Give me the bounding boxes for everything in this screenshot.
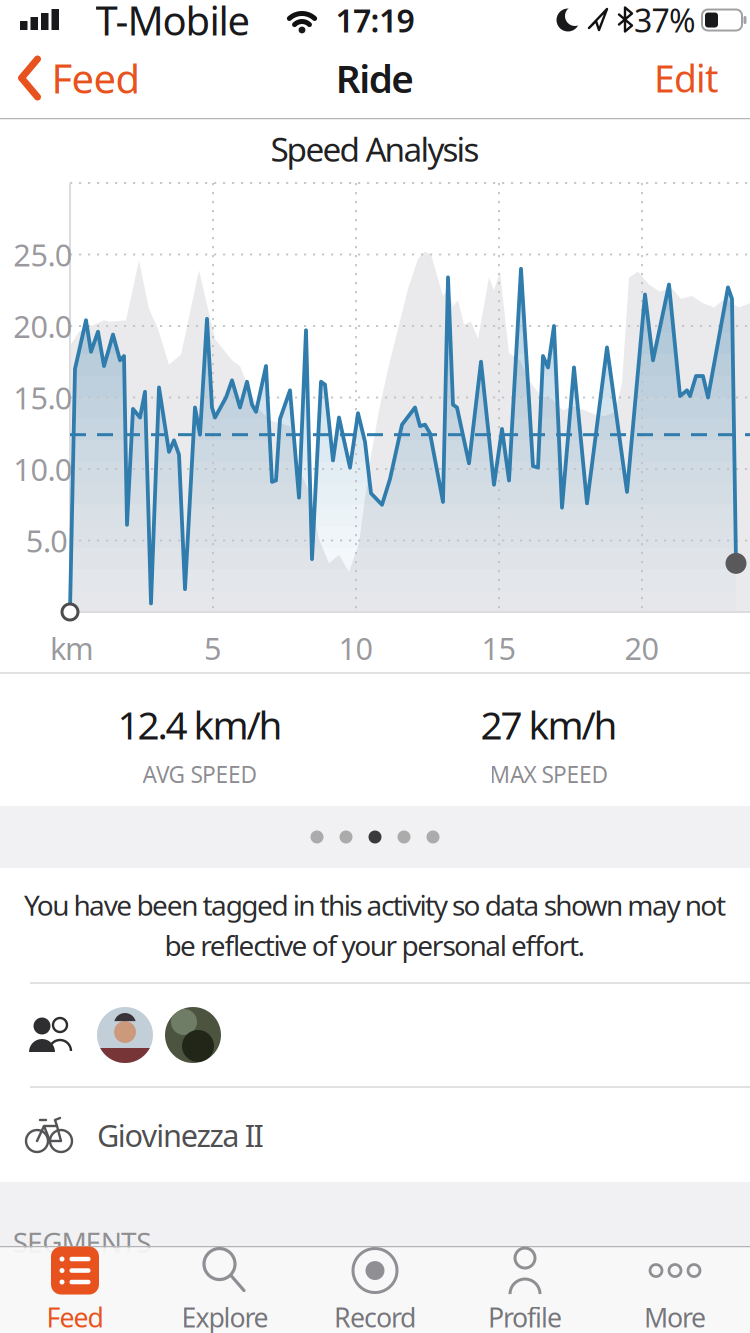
staticText: 20 <box>624 628 660 668</box>
staticText: be reflective of your personal effort. <box>164 926 586 964</box>
button[interactable]: More <box>600 1248 750 1333</box>
staticText: Edit <box>654 53 718 103</box>
staticText: Profile <box>488 1299 562 1333</box>
button[interactable]: Tagged athletes <box>0 984 750 1086</box>
staticText: Giovinezza II <box>97 1115 264 1155</box>
button[interactable]: Feed <box>0 51 140 104</box>
staticText: 27 km/h <box>480 699 617 750</box>
staticText: 17:19 <box>335 0 414 41</box>
staticText: 10.0 <box>13 449 73 489</box>
staticText: Speed Analysis <box>270 127 479 171</box>
button[interactable]: Record <box>300 1248 450 1333</box>
staticText: MAX SPEED <box>489 759 608 789</box>
staticText: Explore <box>181 1299 268 1333</box>
staticText: More <box>644 1299 706 1333</box>
staticText: AVG SPEED <box>142 759 257 789</box>
button[interactable]: Gear: Giovinezza II <box>0 1088 750 1182</box>
staticText: 5.0 <box>26 520 68 561</box>
staticText: T-Mobile <box>95 0 250 46</box>
staticText: Feed <box>51 51 140 104</box>
button[interactable]: Profile <box>450 1248 600 1333</box>
staticText: 15 <box>481 628 517 668</box>
staticText: 25.0 <box>13 234 73 275</box>
staticText: SEGMENTS <box>13 1223 151 1261</box>
staticText: You have been tagged in this activity so… <box>24 886 726 923</box>
staticText: 15.0 <box>13 377 73 418</box>
button[interactable]: Feed <box>0 1248 150 1333</box>
staticText: 37% <box>634 0 696 41</box>
staticText: km <box>50 628 94 668</box>
button[interactable]: Explore <box>150 1248 300 1333</box>
staticText: Feed <box>46 1299 103 1333</box>
staticText: Record <box>334 1299 416 1333</box>
staticText: 10 <box>338 628 374 668</box>
staticText: 12.4 km/h <box>117 699 282 750</box>
staticText: 5 <box>204 628 222 668</box>
button[interactable]: Edit <box>654 53 718 103</box>
staticText: 20.0 <box>13 306 73 346</box>
staticText: Ride <box>336 52 414 104</box>
